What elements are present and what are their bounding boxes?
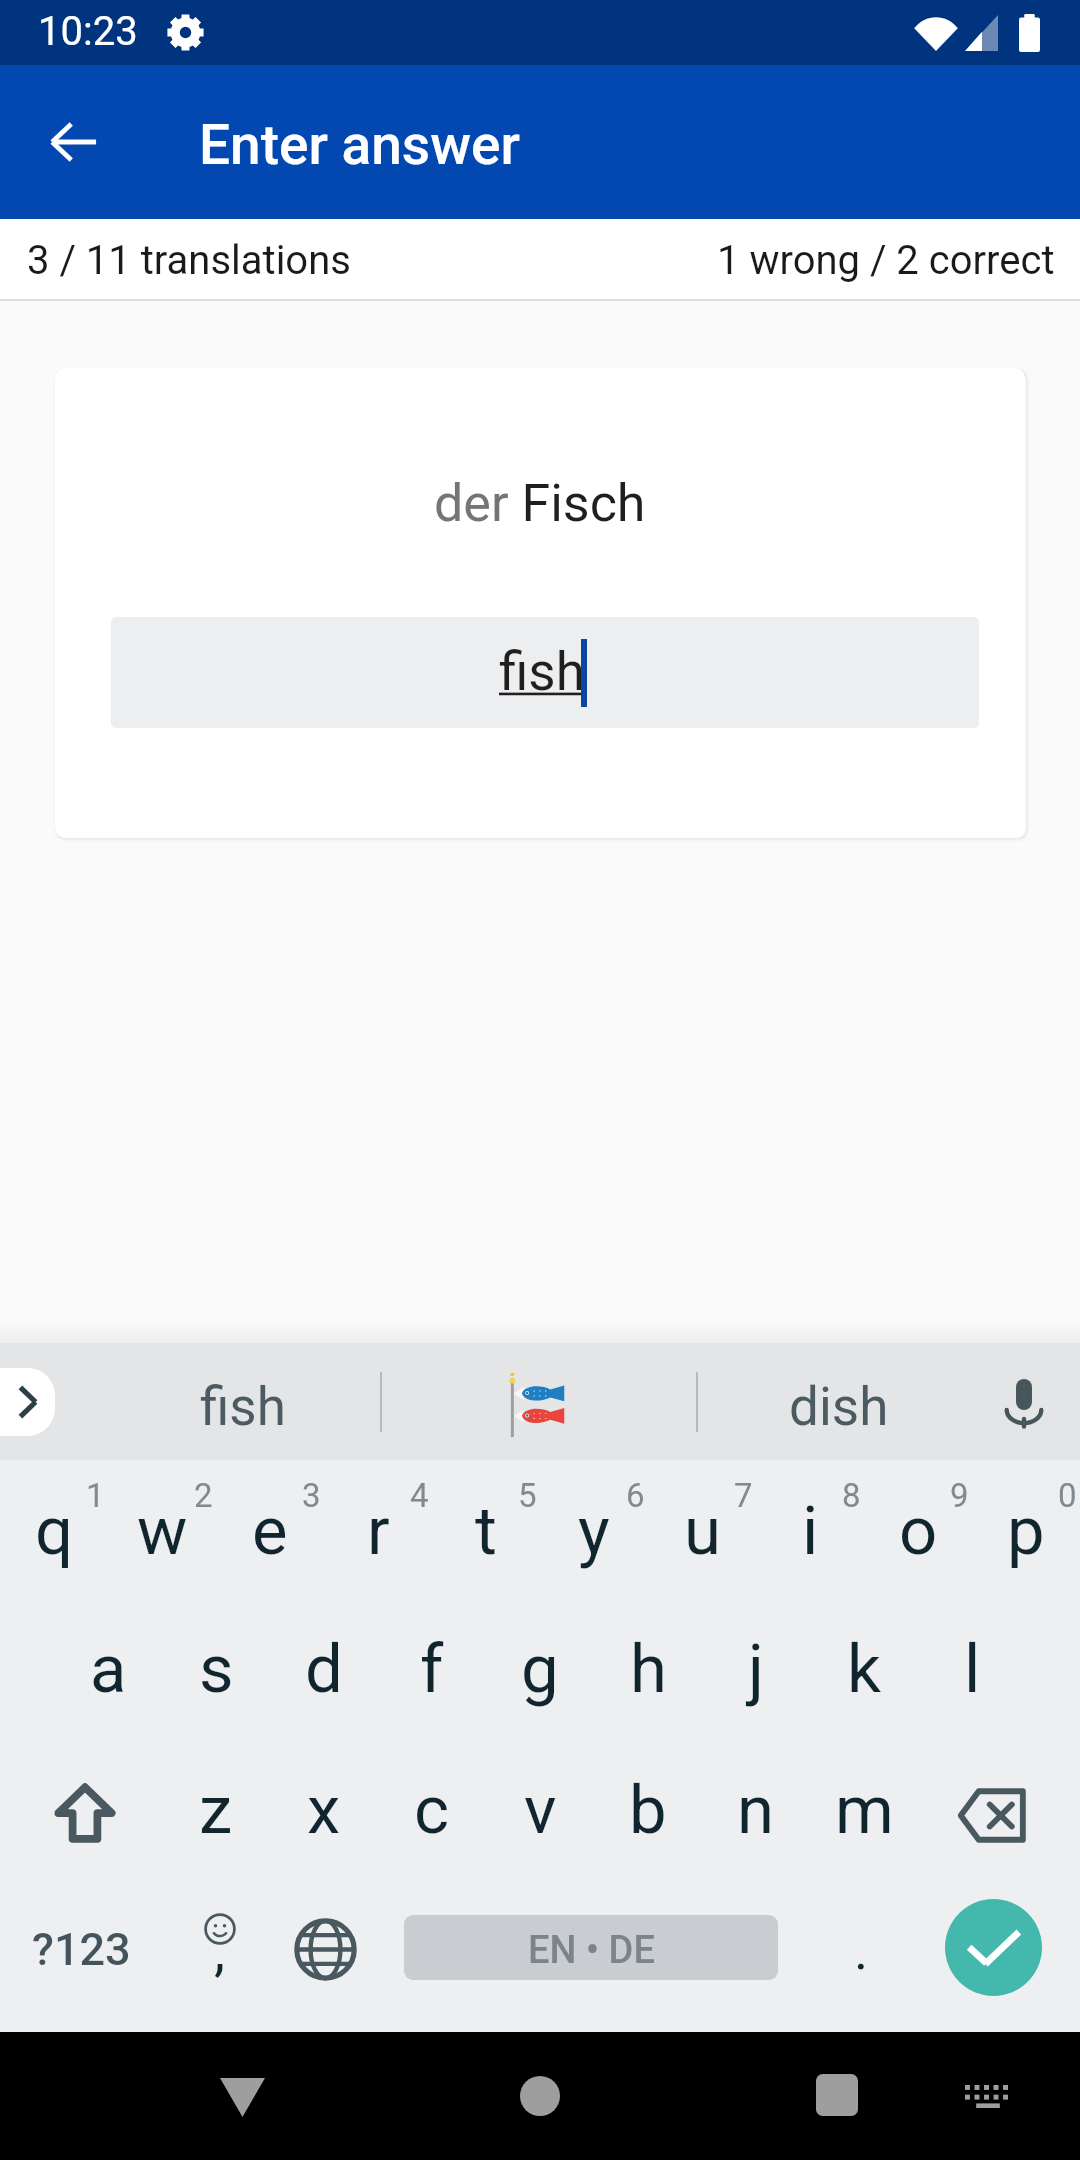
- staticText: c: [414, 1771, 450, 1850]
- staticText: l: [964, 1630, 981, 1709]
- button[interactable]: Emoji and comma: [162, 1889, 272, 2032]
- staticText: 1: [86, 1476, 105, 1515]
- staticText: ,: [214, 1918, 226, 1984]
- button[interactable]: Recent apps: [782, 2041, 892, 2151]
- button[interactable]: y: [540, 1460, 648, 1603]
- staticText: fish: [499, 641, 585, 703]
- staticText: 8: [842, 1476, 861, 1515]
- staticText: 9: [950, 1476, 969, 1515]
- button[interactable]: n: [702, 1746, 810, 1889]
- button[interactable]: r: [324, 1460, 432, 1603]
- staticText: y: [578, 1492, 610, 1571]
- button[interactable]: EN • DE: [404, 1915, 778, 1980]
- staticText: t: [475, 1492, 497, 1571]
- button[interactable]: w: [108, 1460, 216, 1603]
- button[interactable]: u: [648, 1460, 756, 1603]
- staticText: p: [1007, 1492, 1045, 1571]
- button[interactable]: h: [594, 1603, 702, 1746]
- staticText: r: [367, 1492, 390, 1571]
- button[interactable]: x: [270, 1746, 378, 1889]
- button[interactable]: s: [162, 1603, 270, 1746]
- staticText: EN • DE: [528, 1928, 655, 1973]
- staticText: q: [35, 1492, 74, 1571]
- staticText: x: [307, 1771, 341, 1850]
- button[interactable]: g: [486, 1603, 594, 1746]
- staticText: h: [630, 1630, 667, 1709]
- staticText: g: [521, 1630, 559, 1709]
- button[interactable]: Shift: [0, 1746, 162, 1889]
- staticText: z: [199, 1771, 233, 1850]
- staticText: 4: [410, 1476, 429, 1515]
- staticText: i: [802, 1492, 819, 1571]
- button[interactable]: Back: [187, 2041, 297, 2151]
- staticText: o: [899, 1492, 938, 1571]
- staticText: 6: [626, 1476, 645, 1515]
- staticText: s: [199, 1630, 234, 1709]
- staticText: v: [524, 1771, 557, 1850]
- staticText: 10:23: [38, 8, 138, 55]
- staticText: k: [847, 1630, 881, 1709]
- staticText: j: [748, 1630, 765, 1709]
- staticText: 1 wrong / 2 correct: [717, 237, 1055, 284]
- staticText: f: [420, 1630, 444, 1709]
- button[interactable]: b: [594, 1746, 702, 1889]
- staticText: b: [629, 1771, 667, 1850]
- button[interactable]: t: [432, 1460, 540, 1603]
- button[interactable]: Navigate up: [20, 87, 130, 197]
- button[interactable]: dish: [789, 1376, 889, 1438]
- staticText: a: [90, 1630, 127, 1709]
- button[interactable]: f: [378, 1603, 486, 1746]
- staticText: Enter answer: [199, 113, 520, 177]
- button[interactable]: m: [810, 1746, 918, 1889]
- button[interactable]: i: [756, 1460, 864, 1603]
- button[interactable]: Home: [485, 2041, 595, 2151]
- button[interactable]: fish: [111, 617, 979, 728]
- staticText: n: [737, 1771, 775, 1850]
- button[interactable]: ?123: [0, 1889, 162, 2032]
- staticText: .: [854, 1919, 869, 1982]
- staticText: ?123: [32, 1923, 131, 1976]
- button[interactable]: .: [795, 1889, 925, 2032]
- button[interactable]: fish: [200, 1376, 286, 1438]
- button[interactable]: l: [918, 1603, 1026, 1746]
- staticText: der Fisch: [434, 473, 646, 534]
- button[interactable]: Backspace: [918, 1746, 1080, 1889]
- staticText: d: [305, 1630, 343, 1709]
- button[interactable]: Switch keyboard: [931, 2041, 1041, 2151]
- staticText: 3: [302, 1476, 321, 1515]
- staticText: w: [137, 1492, 188, 1571]
- button[interactable]: o: [864, 1460, 972, 1603]
- button[interactable]: Voice input: [984, 1362, 1064, 1442]
- button[interactable]: q: [0, 1460, 108, 1603]
- staticText: 2: [194, 1476, 213, 1515]
- button[interactable]: d: [270, 1603, 378, 1746]
- button[interactable]: Submit answer: [921, 1899, 1066, 1996]
- staticText: u: [684, 1492, 721, 1571]
- staticText: e: [252, 1492, 288, 1571]
- button[interactable]: k: [810, 1603, 918, 1746]
- staticText: 7: [734, 1476, 753, 1515]
- button[interactable]: a: [54, 1603, 162, 1746]
- button[interactable]: z: [162, 1746, 270, 1889]
- button[interactable]: e: [216, 1460, 324, 1603]
- button[interactable]: j: [702, 1603, 810, 1746]
- staticText: m: [835, 1771, 894, 1850]
- button[interactable]: p: [972, 1460, 1080, 1603]
- button[interactable]: c: [378, 1746, 486, 1889]
- staticText: 5: [518, 1476, 537, 1515]
- button[interactable]: Change keyboard language: [265, 1889, 385, 2032]
- staticText: 3 / 11 translations: [27, 237, 351, 284]
- button[interactable]: Expand suggestions: [0, 1368, 55, 1436]
- button[interactable]: v: [486, 1746, 594, 1889]
- staticText: 0: [1058, 1476, 1077, 1515]
